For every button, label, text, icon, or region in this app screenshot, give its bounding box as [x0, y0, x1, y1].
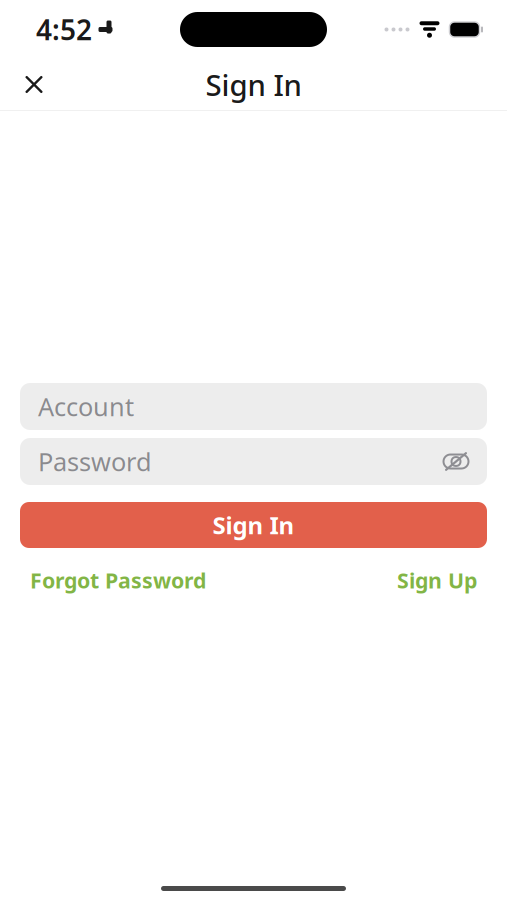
button[interactable]: Sign Up — [387, 560, 477, 600]
button[interactable]: Show password — [439, 444, 473, 478]
staticText: 4:52 — [36, 11, 92, 48]
button[interactable]: Forgot Password — [30, 560, 216, 600]
staticText: Forgot Password — [30, 566, 206, 594]
staticText: Password — [38, 445, 152, 478]
staticText: Sign In — [212, 509, 294, 541]
staticText: Account — [38, 390, 134, 423]
staticText: Sign In — [205, 65, 301, 104]
staticText: Sign Up — [397, 566, 477, 594]
button[interactable]: Close — [8, 58, 60, 110]
button[interactable]: Sign In — [20, 502, 487, 548]
